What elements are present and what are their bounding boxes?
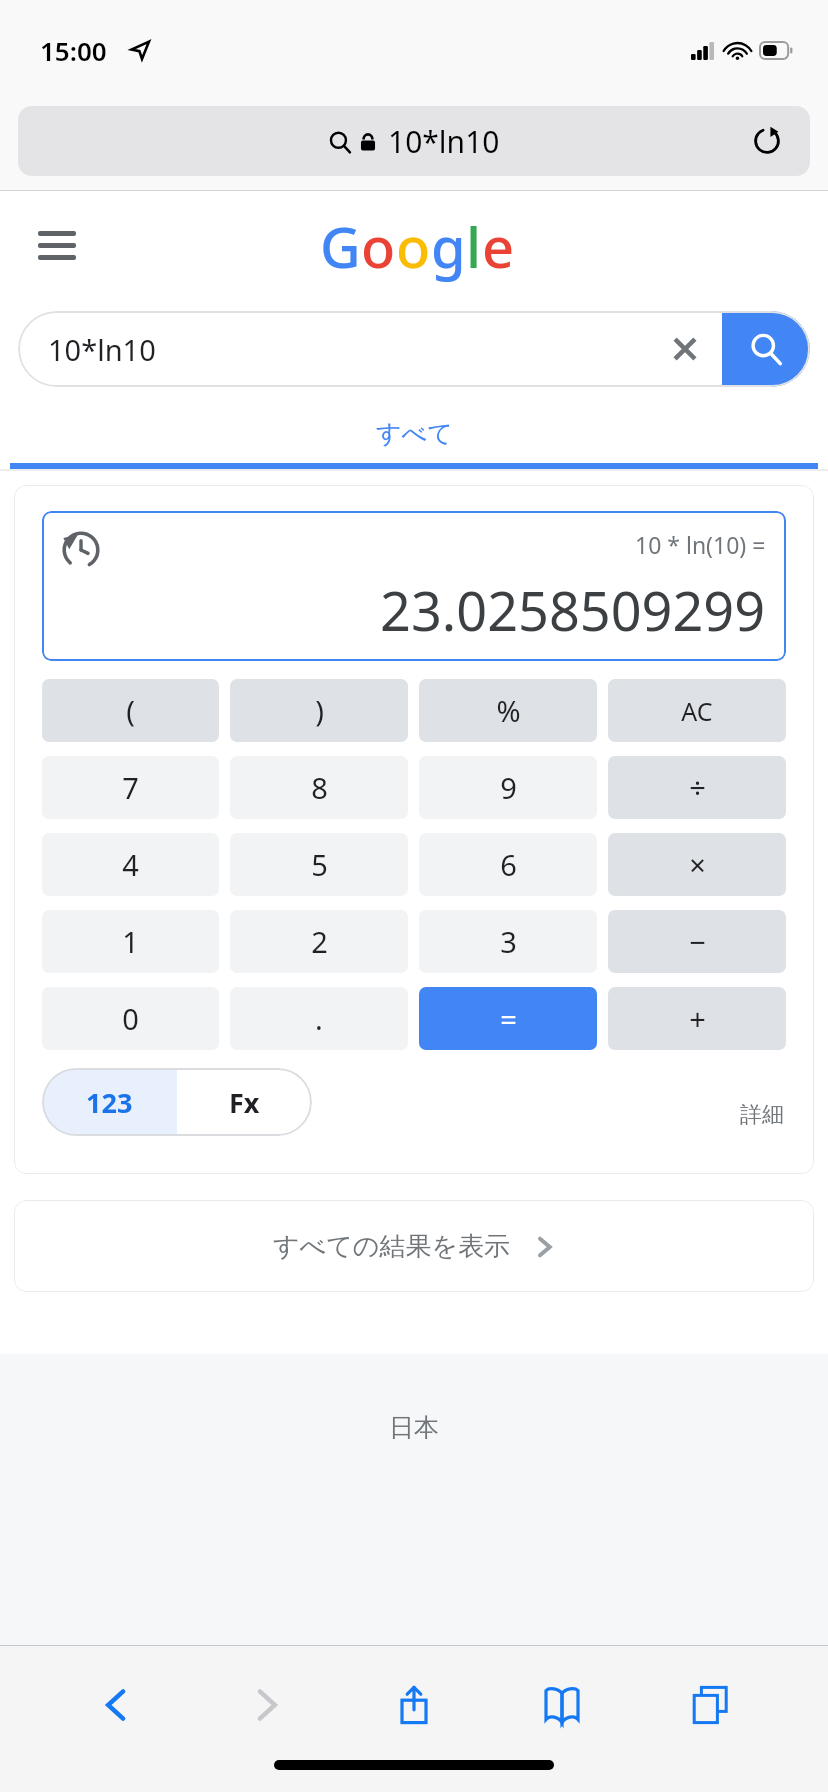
button[interactable]: 5: [230, 833, 408, 896]
button[interactable]: +: [608, 987, 786, 1050]
staticText: 10*ln10: [48, 330, 670, 369]
staticText: e: [482, 208, 515, 284]
staticText: すべて: [376, 418, 453, 449]
staticText: g: [431, 208, 466, 284]
button[interactable]: Share: [383, 1674, 445, 1736]
staticText: o: [361, 208, 396, 284]
staticText: 15:00: [40, 33, 107, 68]
staticText: −: [689, 922, 706, 961]
staticText: 7: [122, 768, 139, 807]
staticText: 3: [500, 922, 517, 961]
staticText: 10 * ln(10) =: [635, 529, 766, 560]
button[interactable]: 2: [230, 910, 408, 973]
button[interactable]: 1: [42, 910, 219, 973]
other: Clear: [670, 334, 700, 364]
staticText: ÷: [689, 768, 706, 807]
button[interactable]: %: [419, 679, 597, 742]
button[interactable]: ×: [608, 833, 786, 896]
staticText: .: [315, 999, 323, 1038]
button[interactable]: 6: [419, 833, 597, 896]
staticText: AC: [681, 694, 713, 728]
button[interactable]: ÷: [608, 756, 786, 819]
staticText: o: [396, 208, 431, 284]
button[interactable]: =: [419, 987, 597, 1050]
other: History: [60, 529, 102, 571]
button[interactable]: 詳細: [740, 1101, 784, 1129]
staticText: ×: [689, 845, 706, 884]
staticText: =: [500, 999, 517, 1038]
staticText: %: [496, 691, 521, 730]
button[interactable]: すべて: [0, 397, 828, 469]
button[interactable]: Tabs: [680, 1674, 742, 1736]
button[interactable]: 8: [230, 756, 408, 819]
button[interactable]: 9: [419, 756, 597, 819]
button[interactable]: .: [230, 987, 408, 1050]
staticText: +: [689, 999, 706, 1038]
button[interactable]: ): [230, 679, 408, 742]
staticText: G: [320, 208, 361, 284]
staticText: 0: [122, 999, 139, 1038]
button[interactable]: AC: [608, 679, 786, 742]
button[interactable]: Back: [86, 1674, 148, 1736]
staticText: 1: [122, 922, 139, 961]
button[interactable]: Menu: [38, 231, 76, 261]
staticText: ): [315, 691, 324, 730]
staticText: すべての結果を表示: [273, 1230, 511, 1263]
button[interactable]: (: [42, 679, 219, 742]
staticText: 10*ln10: [388, 121, 500, 162]
button[interactable]: History: [42, 511, 786, 661]
staticText: 123: [86, 1084, 133, 1121]
button[interactable]: 10*ln10: [18, 311, 810, 387]
button[interactable]: 10*ln10: [18, 106, 810, 176]
staticText: 9: [500, 768, 517, 807]
staticText: 2: [311, 922, 328, 961]
staticText: 4: [122, 845, 139, 884]
staticText: Fx: [229, 1084, 260, 1121]
staticText: 5: [311, 845, 328, 884]
staticText: 23.0258509299: [380, 573, 766, 647]
button[interactable]: 123: [42, 1068, 177, 1136]
staticText: 8: [311, 768, 328, 807]
staticText: (: [126, 691, 135, 730]
button[interactable]: −: [608, 910, 786, 973]
button[interactable]: すべての結果を表示: [14, 1200, 814, 1292]
button[interactable]: Bookmarks: [531, 1674, 593, 1736]
button[interactable]: Forward: [235, 1674, 297, 1736]
staticText: l: [466, 208, 482, 284]
button[interactable]: 4: [42, 833, 219, 896]
staticText: 日本: [389, 1412, 439, 1443]
button[interactable]: Fx: [177, 1068, 312, 1136]
button[interactable]: 3: [419, 910, 597, 973]
staticText: 6: [500, 845, 517, 884]
button[interactable]: 0: [42, 987, 219, 1050]
other: Reload: [752, 126, 782, 156]
button[interactable]: 7: [42, 756, 219, 819]
button[interactable]: Search: [722, 311, 810, 387]
